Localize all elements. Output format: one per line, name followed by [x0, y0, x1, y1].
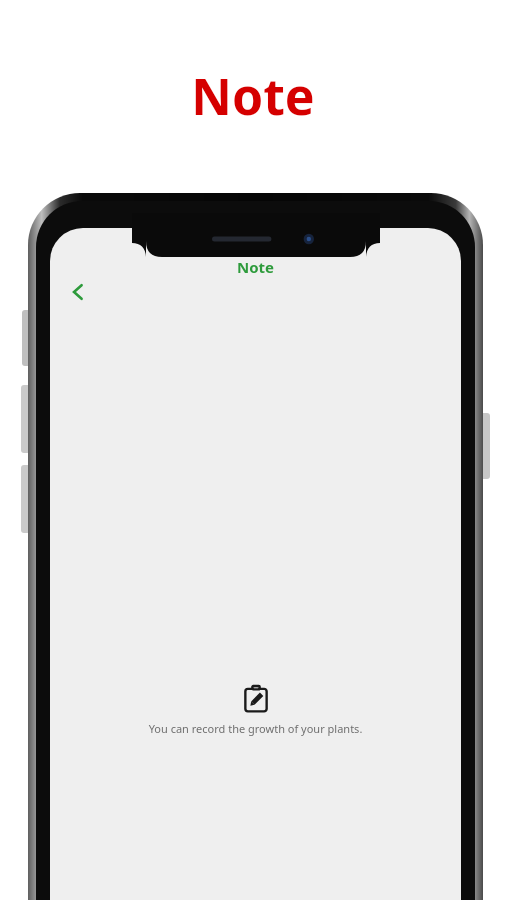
button[interactable]: Back — [56, 270, 100, 314]
staticText: Note — [0, 62, 506, 130]
staticText: Note — [237, 257, 275, 277]
staticText: You can record the growth of your plants… — [62, 721, 449, 736]
